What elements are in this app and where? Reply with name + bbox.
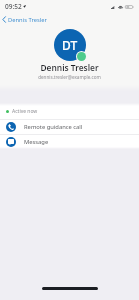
staticText: Message	[24, 138, 49, 146]
staticText: Remote guidance call	[24, 123, 83, 131]
button[interactable]: Message	[0, 135, 139, 148]
button[interactable]: Dennis Tresler	[0, 13, 139, 26]
staticText: Dennis Tresler	[8, 16, 47, 24]
button[interactable]: Remote guidance call	[0, 120, 139, 134]
staticText: Active now	[12, 108, 38, 115]
staticText: dennis.tresler@example.com	[0, 74, 139, 80]
staticText: 09:52	[5, 2, 22, 11]
staticText: Dennis Tresler	[0, 62, 139, 73]
staticText: DT	[62, 37, 78, 53]
